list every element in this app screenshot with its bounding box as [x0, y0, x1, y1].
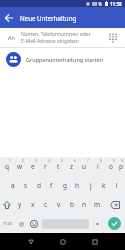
button[interactable]: c: [39, 195, 52, 214]
staticText: u: [82, 162, 87, 171]
staticText: 1: [9, 159, 11, 163]
button[interactable]: l: [110, 176, 123, 195]
staticText: k: [102, 181, 106, 190]
button[interactable]: u: [78, 157, 91, 176]
button[interactable]: t: [52, 157, 65, 176]
staticText: w: [17, 162, 23, 171]
staticText: j: [90, 181, 92, 190]
staticText: o: [109, 162, 113, 171]
button[interactable]: p: [117, 157, 125, 176]
button[interactable]: Gruppenunterhaltung starten: [0, 48, 125, 70]
staticText: i: [97, 162, 99, 171]
staticText: 6: [74, 159, 76, 163]
staticText: z: [70, 162, 74, 171]
staticText: 9: [113, 159, 115, 163]
button[interactable]: w: [13, 157, 26, 176]
button[interactable]: r: [39, 157, 52, 176]
staticText: r: [44, 162, 47, 171]
button[interactable]: f: [45, 176, 58, 195]
staticText: g: [63, 181, 67, 190]
button[interactable]: [0, 9, 18, 27]
staticText: e: [31, 162, 35, 171]
button[interactable]: s: [19, 176, 32, 195]
staticText: y: [18, 200, 22, 209]
staticText: p: [119, 162, 123, 171]
button[interactable]: q: [0, 157, 13, 176]
button[interactable]: [90, 214, 104, 233]
staticText: 99 %: [92, 1, 103, 7]
staticText: Gruppenunterhaltung starten: [26, 56, 104, 63]
button[interactable]: [56, 235, 70, 249]
staticText: q: [5, 162, 9, 171]
staticText: 0: [121, 159, 123, 163]
staticText: f: [50, 181, 53, 190]
button[interactable]: k: [97, 176, 110, 195]
staticText: t: [57, 162, 60, 171]
button[interactable]: n: [78, 195, 91, 214]
staticText: n: [82, 200, 87, 209]
staticText: @: [19, 220, 24, 227]
button[interactable]: [24, 235, 38, 249]
button[interactable]: b: [65, 195, 78, 214]
staticText: An: [8, 34, 15, 41]
button[interactable]: g: [58, 176, 71, 195]
staticText: c: [44, 200, 48, 209]
staticText: v: [57, 200, 61, 209]
button[interactable]: [104, 214, 125, 233]
staticText: ?123: [3, 221, 13, 227]
staticText: b: [70, 200, 74, 209]
button[interactable]: @: [15, 214, 27, 233]
button[interactable]: d: [32, 176, 45, 195]
staticText: Neue Unterhaltung: [20, 14, 77, 22]
button[interactable]: o: [104, 157, 117, 176]
staticText: E-Mail-Adresse eingeben: [21, 38, 79, 45]
staticText: Namen, Telefonnummer oder: [21, 31, 91, 38]
staticText: a: [11, 181, 15, 190]
button[interactable]: h: [71, 176, 84, 195]
button[interactable]: i: [91, 157, 104, 176]
button[interactable]: j: [84, 176, 97, 195]
staticText: 7: [87, 159, 89, 163]
staticText: l: [116, 181, 118, 190]
staticText: m: [94, 200, 101, 209]
button[interactable]: v: [52, 195, 65, 214]
button[interactable]: [40, 214, 90, 233]
staticText: 2: [22, 159, 24, 163]
button[interactable]: m: [91, 195, 104, 214]
button[interactable]: [88, 235, 102, 249]
button[interactable]: y: [13, 195, 26, 214]
button[interactable]: ?123: [0, 214, 15, 233]
staticText: h: [75, 181, 80, 190]
staticText: 8: [100, 159, 102, 163]
staticText: d: [37, 181, 41, 190]
staticText: 3: [35, 159, 37, 163]
button[interactable]: [27, 214, 40, 233]
button[interactable]: x: [26, 195, 39, 214]
button[interactable]: e: [26, 157, 39, 176]
button[interactable]: [104, 195, 125, 214]
staticText: 11:58: [110, 1, 122, 7]
staticText: 5: [61, 159, 63, 163]
button[interactable]: a: [6, 176, 19, 195]
button[interactable]: An: [0, 28, 125, 47]
staticText: x: [31, 200, 35, 209]
button[interactable]: [0, 195, 13, 214]
button[interactable]: z: [65, 157, 78, 176]
staticText: 4: [48, 159, 50, 163]
staticText: s: [24, 181, 28, 190]
